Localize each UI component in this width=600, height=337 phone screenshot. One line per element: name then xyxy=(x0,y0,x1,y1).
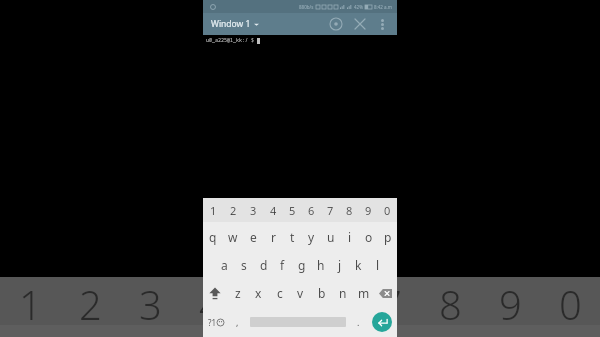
button[interactable]: l xyxy=(368,251,387,279)
button[interactable]: 5 xyxy=(283,198,302,222)
button[interactable]: Symbols and emoji xyxy=(203,307,228,337)
staticText: 5 xyxy=(259,277,282,325)
staticText: v xyxy=(297,285,304,301)
button[interactable]: n xyxy=(332,279,353,307)
staticText: 2 xyxy=(230,203,237,218)
button[interactable]: y xyxy=(302,222,321,251)
staticText: , xyxy=(236,316,239,328)
staticText: 8:42 a.m xyxy=(374,4,393,10)
button[interactable]: b xyxy=(311,279,332,307)
button[interactable]: More options xyxy=(374,16,390,32)
staticText: 880b/s xyxy=(299,4,314,10)
staticText: . xyxy=(357,316,360,328)
staticText: d xyxy=(260,257,268,273)
staticText: 0 xyxy=(384,203,391,218)
button[interactable]: d xyxy=(254,251,273,279)
button[interactable]: k xyxy=(349,251,368,279)
button[interactable]: s xyxy=(234,251,254,279)
button[interactable]: r xyxy=(263,222,283,251)
staticText: w xyxy=(228,229,238,245)
button[interactable]: z xyxy=(227,279,248,307)
button[interactable]: h xyxy=(311,251,330,279)
staticText: t xyxy=(290,229,295,245)
button[interactable]: p xyxy=(378,222,397,251)
staticText: x xyxy=(255,285,262,301)
button[interactable]: a xyxy=(214,251,234,279)
button[interactable]: x xyxy=(248,279,269,307)
button[interactable]: Shift xyxy=(203,279,227,307)
staticText: k xyxy=(355,257,362,273)
staticText: 3 xyxy=(139,277,162,325)
button[interactable]: 6 xyxy=(302,198,321,222)
button[interactable]: v xyxy=(290,279,311,307)
staticText: Window 1 xyxy=(211,18,251,30)
staticText: 7 xyxy=(379,277,402,325)
button[interactable]: . xyxy=(349,307,367,337)
staticText: 6 xyxy=(319,277,342,325)
button[interactable]: 3 xyxy=(243,198,263,222)
staticText: b xyxy=(318,285,326,301)
button[interactable]: Space xyxy=(246,307,349,337)
button[interactable]: 0 xyxy=(378,198,397,222)
button[interactable]: 7 xyxy=(321,198,340,222)
staticText: m xyxy=(358,285,370,301)
button[interactable]: c xyxy=(269,279,290,307)
button[interactable]: 2 xyxy=(223,198,243,222)
button[interactable]: 1 xyxy=(203,198,223,222)
staticText: z xyxy=(235,285,241,301)
button[interactable]: t xyxy=(283,222,302,251)
staticText: 5 xyxy=(289,203,296,218)
button[interactable]: Close xyxy=(351,15,369,33)
button[interactable]: g xyxy=(292,251,311,279)
button[interactable]: Window 1 xyxy=(210,15,260,33)
button[interactable]: q xyxy=(203,222,223,251)
staticText: r xyxy=(271,229,276,245)
button[interactable]: m xyxy=(353,279,374,307)
button[interactable]: Backspace xyxy=(374,279,397,307)
staticText: 1 xyxy=(210,203,217,218)
staticText: n xyxy=(339,285,347,301)
staticText: y xyxy=(308,229,315,245)
staticText: ?1 xyxy=(208,317,217,328)
staticText: h xyxy=(317,257,325,273)
staticText: g xyxy=(298,257,306,273)
staticText: q xyxy=(209,229,217,245)
button[interactable]: 4 xyxy=(263,198,283,222)
button[interactable]: u xyxy=(321,222,340,251)
staticText: 4 xyxy=(199,277,222,325)
button[interactable]: f xyxy=(273,251,292,279)
staticText: 9 xyxy=(365,203,372,218)
staticText: 9 xyxy=(499,277,522,325)
button[interactable]: Record xyxy=(327,15,345,33)
button[interactable]: 8 xyxy=(340,198,359,222)
staticText: 4 xyxy=(270,203,277,218)
button[interactable]: 9 xyxy=(359,198,378,222)
staticText: 2 xyxy=(79,277,102,325)
staticText: f xyxy=(280,257,285,273)
button[interactable]: Enter xyxy=(367,307,397,337)
staticText: 8 xyxy=(439,277,462,325)
staticText: 0 xyxy=(559,277,582,325)
button[interactable]: , xyxy=(228,307,246,337)
button[interactable]: o xyxy=(359,222,378,251)
staticText: u0_a225@l_kk:/ $ xyxy=(206,37,255,44)
staticText: a xyxy=(221,257,228,273)
staticText: s xyxy=(241,257,247,273)
staticText: 6 xyxy=(308,203,315,218)
staticText: 3 xyxy=(250,203,257,218)
staticText: u xyxy=(327,229,335,245)
button[interactable]: j xyxy=(330,251,349,279)
staticText: e xyxy=(250,229,257,245)
staticText: l xyxy=(376,257,380,273)
staticText: i xyxy=(348,229,352,245)
staticText: p xyxy=(384,229,392,245)
staticText: o xyxy=(365,229,373,245)
button[interactable]: e xyxy=(243,222,263,251)
staticText: 7 xyxy=(327,203,334,218)
button[interactable]: i xyxy=(340,222,359,251)
staticText: 42% xyxy=(354,4,363,10)
staticText: j xyxy=(338,257,342,273)
button[interactable]: w xyxy=(223,222,243,251)
staticText: 1 xyxy=(19,277,42,325)
staticText: 8 xyxy=(346,203,353,218)
